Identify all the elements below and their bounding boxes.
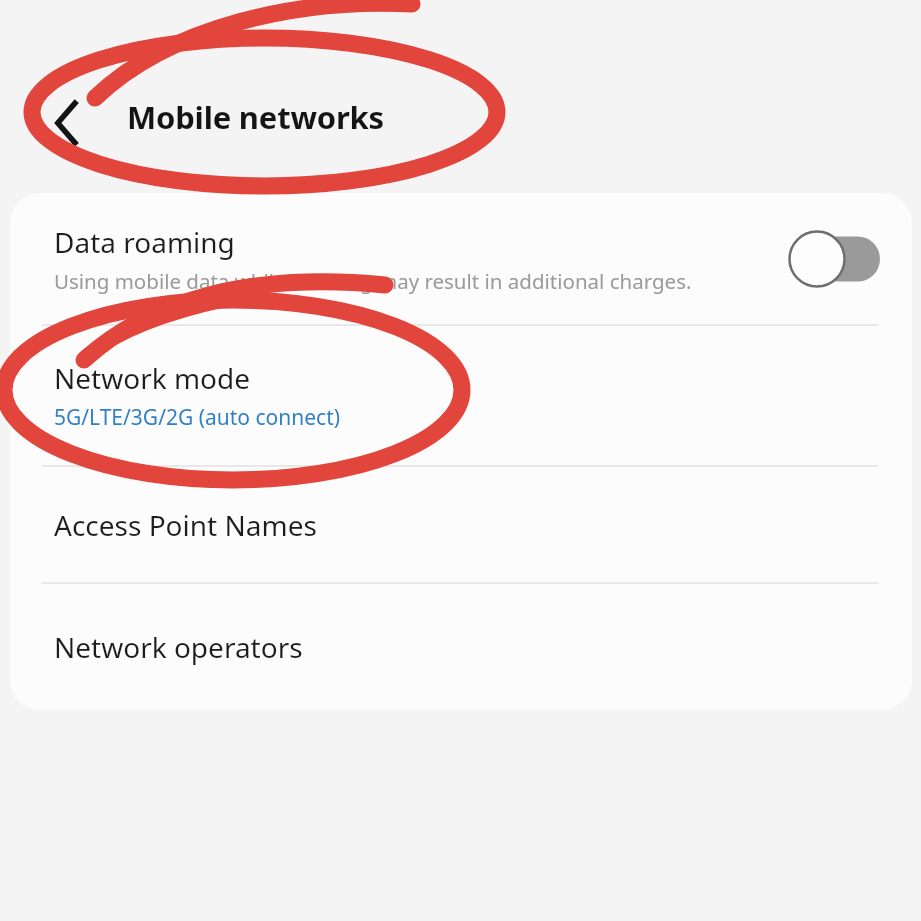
staticText: Network operators <box>54 628 303 666</box>
staticText: Data roaming <box>54 223 235 261</box>
button[interactable]: Access Point Names <box>10 467 912 582</box>
button[interactable]: Data roaming toggle <box>788 230 880 288</box>
button[interactable]: Data roaming <box>10 193 912 324</box>
staticText: Access Point Names <box>54 506 317 544</box>
staticText: Using mobile data while roaming may resu… <box>54 267 692 295</box>
button[interactable]: Network mode <box>10 326 912 465</box>
button[interactable]: Back <box>38 90 104 156</box>
staticText: 5G/LTE/3G/2G (auto connect) <box>54 403 341 432</box>
staticText: Network mode <box>54 359 251 397</box>
staticText: Mobile networks <box>127 96 384 138</box>
button[interactable]: Network operators <box>10 584 912 710</box>
